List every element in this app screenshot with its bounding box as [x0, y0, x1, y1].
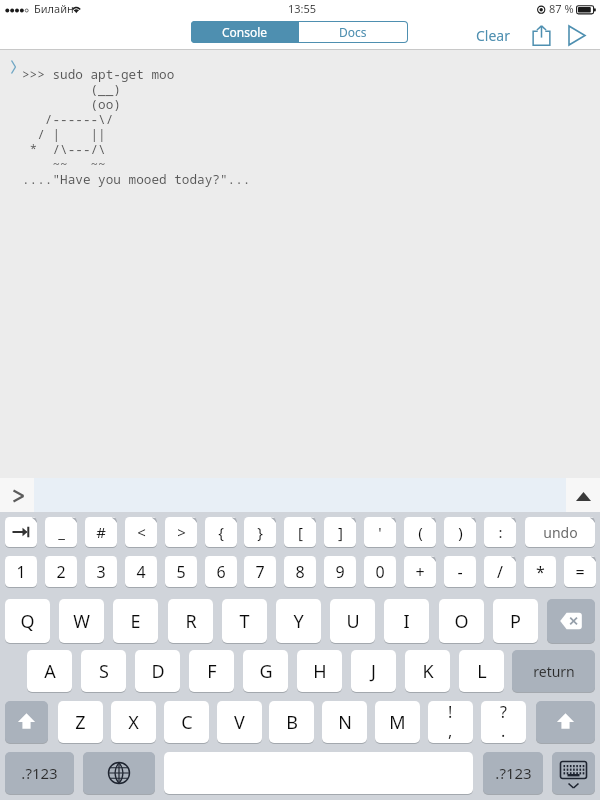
staticText: V [234, 710, 245, 735]
button[interactable]: F [189, 650, 234, 692]
button[interactable]: 3 [85, 556, 117, 587]
button[interactable]: .?123 [5, 752, 74, 794]
button[interactable]: M [375, 701, 420, 743]
button[interactable]: ( [404, 517, 436, 547]
button[interactable]: S [81, 650, 126, 692]
button[interactable]: B [269, 701, 314, 743]
button[interactable]: 6 [205, 556, 237, 587]
button[interactable]: [ [284, 517, 316, 547]
button[interactable]: 0 [364, 556, 396, 587]
button[interactable]: # [85, 517, 117, 547]
button[interactable]: Change keyboard [83, 752, 155, 794]
button[interactable]: D [135, 650, 180, 692]
button[interactable]: I [384, 599, 429, 643]
button[interactable]: O [439, 599, 484, 643]
staticText: > [177, 522, 186, 542]
button[interactable]: - [444, 556, 476, 587]
button[interactable]: E [113, 599, 158, 643]
button[interactable]: 9 [324, 556, 356, 587]
button[interactable]: 8 [284, 556, 316, 587]
button[interactable]: Hide keyboard [552, 752, 595, 794]
button[interactable]: X [111, 701, 156, 743]
staticText: ( [418, 522, 423, 542]
button[interactable]: Console [191, 21, 299, 43]
staticText: N [338, 710, 352, 735]
button[interactable]: Z [58, 701, 103, 743]
button[interactable]: < [125, 517, 157, 547]
staticText: Console [222, 24, 268, 40]
button[interactable]: } [244, 517, 276, 547]
button[interactable]: R [168, 599, 213, 643]
staticText: D [151, 659, 165, 684]
button[interactable]: J [351, 650, 396, 692]
staticText: G [259, 659, 273, 684]
button[interactable]: 4 [125, 556, 157, 587]
button[interactable]: _ [45, 517, 77, 547]
staticText: R [185, 609, 197, 634]
staticText: + [415, 561, 425, 583]
staticText: 0 [375, 561, 385, 583]
staticText: # [96, 522, 106, 542]
button[interactable]: K [405, 650, 450, 692]
button[interactable]: : [484, 517, 516, 547]
button[interactable]: undo [525, 517, 595, 547]
staticText: U [346, 609, 360, 634]
button[interactable]: T [222, 599, 267, 643]
staticText: C [181, 710, 193, 735]
button[interactable]: U [330, 599, 375, 643]
button[interactable]: Clear [471, 22, 515, 49]
button[interactable]: Prompt [0, 478, 34, 512]
button[interactable]: G [243, 650, 288, 692]
button[interactable]: N [322, 701, 367, 743]
staticText: 13:55 [288, 1, 317, 16]
staticText: 7 [255, 561, 265, 583]
button[interactable]: Docs [299, 22, 407, 42]
button[interactable]: Y [276, 599, 321, 643]
button[interactable]: P [493, 599, 538, 643]
button[interactable]: L [459, 650, 504, 692]
button[interactable]: Shift [536, 701, 595, 743]
button[interactable]: Share [527, 21, 555, 49]
staticText: Q [20, 609, 35, 634]
staticText: 8 [295, 561, 305, 583]
button[interactable]: W [59, 599, 104, 643]
staticText: ] [338, 522, 343, 542]
button[interactable]: .?123 [483, 752, 543, 794]
staticText: Z [75, 710, 86, 735]
button[interactable]: 7 [244, 556, 276, 587]
button[interactable]: Tab [5, 517, 37, 547]
button[interactable]: ] [324, 517, 356, 547]
button[interactable]: C [164, 701, 209, 743]
staticText: [ [298, 522, 303, 542]
staticText: * [536, 561, 545, 583]
button[interactable]: ? [481, 701, 526, 743]
button[interactable]: { [205, 517, 237, 547]
staticText: A [44, 659, 56, 684]
button[interactable]: A [27, 650, 72, 692]
button[interactable]: V [217, 701, 262, 743]
button[interactable]: 2 [45, 556, 77, 587]
button[interactable]: 1 [5, 556, 37, 587]
button[interactable]: * [524, 556, 556, 587]
button[interactable]: Run [563, 21, 591, 49]
staticText: - [457, 561, 463, 583]
button[interactable]: H [297, 650, 342, 692]
button[interactable]: ! [428, 701, 473, 743]
button[interactable]: ' [364, 517, 396, 547]
staticText: = [575, 561, 585, 583]
button[interactable]: Q [5, 599, 50, 643]
button[interactable]: / [484, 556, 516, 587]
button[interactable]: + [404, 556, 436, 587]
button[interactable]: = [564, 556, 596, 587]
button[interactable]: ) [444, 517, 476, 547]
button[interactable]: 5 [165, 556, 197, 587]
button[interactable]: return [512, 650, 595, 692]
button[interactable]: Scroll up [566, 478, 600, 512]
button[interactable]: Backspace [547, 599, 595, 643]
button[interactable]: > [165, 517, 197, 547]
staticText: . [501, 720, 506, 740]
staticText: ) [458, 522, 463, 542]
button[interactable]: Shift [5, 701, 48, 743]
